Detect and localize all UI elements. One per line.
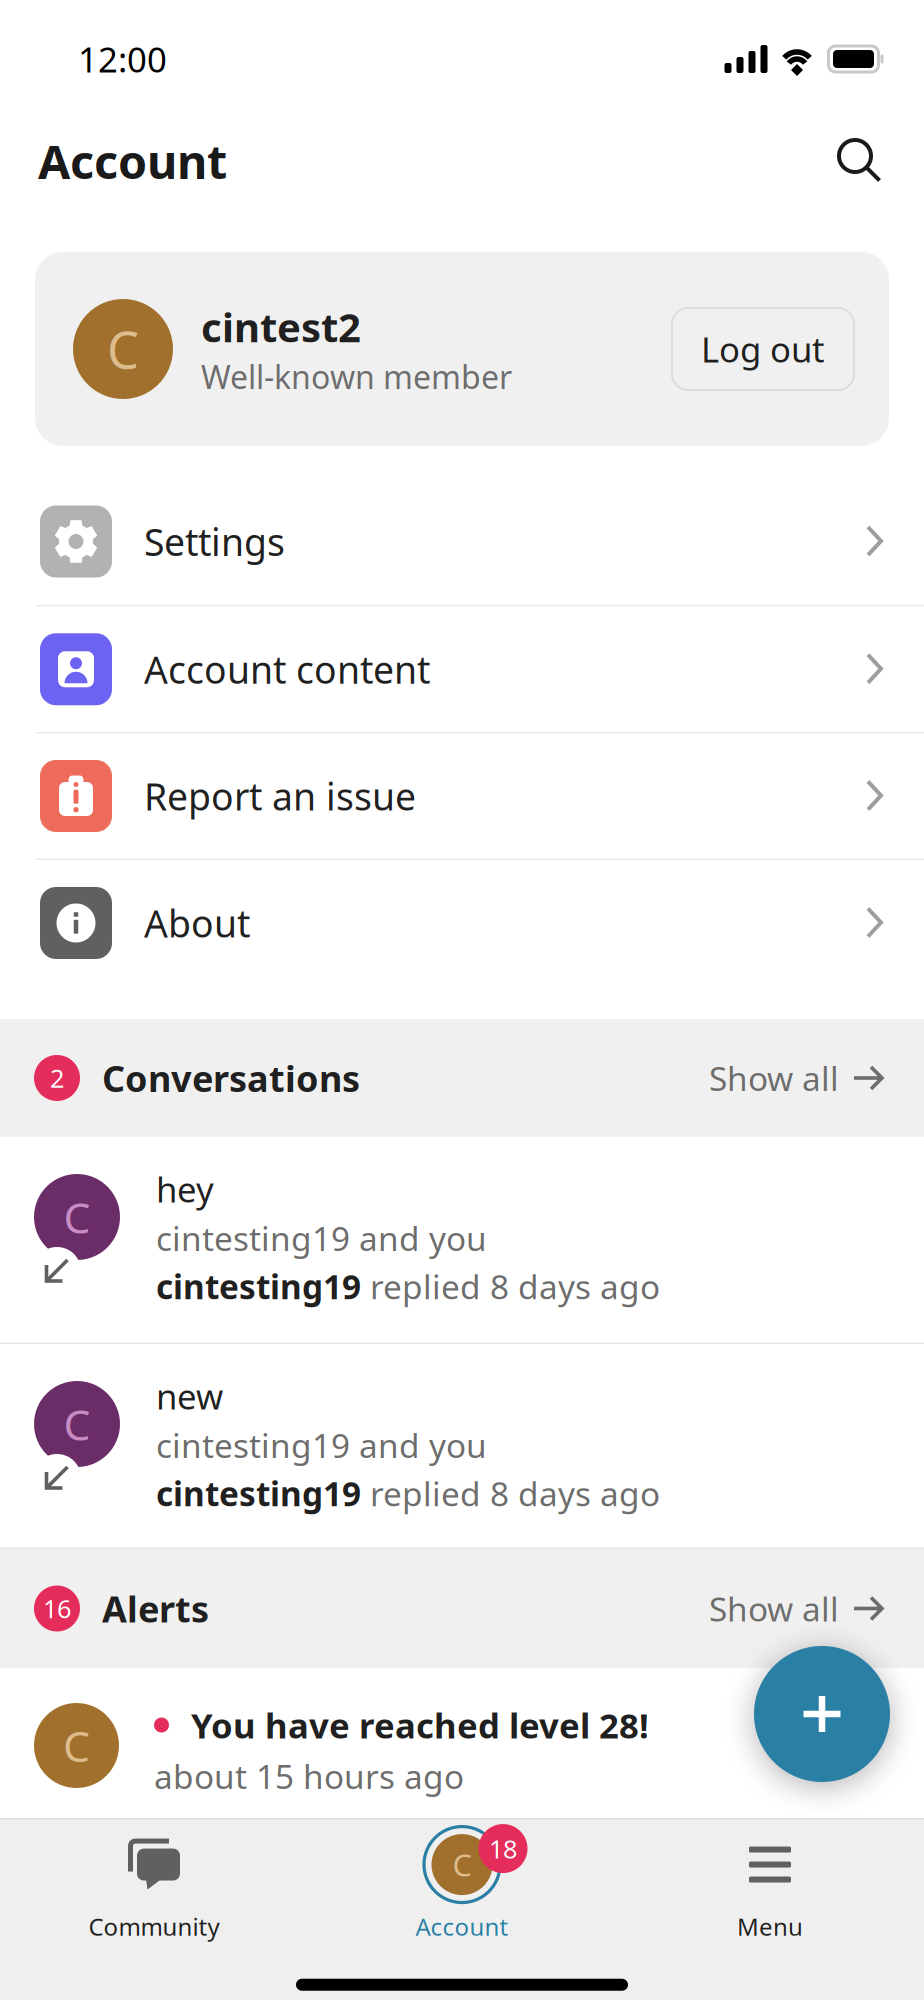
staticText: C: [452, 1844, 471, 1885]
staticText: about 15 hours ago: [154, 1754, 464, 1798]
staticText: 18: [489, 1832, 517, 1865]
button[interactable]: Search: [834, 135, 886, 187]
staticText: Well-known member: [201, 355, 512, 398]
button[interactable]: New post: [754, 1646, 890, 1782]
button[interactable]: C: [0, 1668, 924, 1818]
staticText: Menu: [737, 1911, 803, 1942]
button[interactable]: C: [0, 1137, 924, 1344]
staticText: 12:00: [78, 36, 167, 82]
button[interactable]: Community: [0, 1819, 308, 1949]
button[interactable]: Report an issue: [0, 733, 924, 860]
staticText: C: [63, 1189, 90, 1245]
staticText: C: [107, 315, 139, 383]
staticText: cintesting19: [156, 1264, 361, 1309]
button[interactable]: Log out: [672, 308, 854, 390]
button[interactable]: Show all: [709, 1586, 884, 1631]
staticText: Account: [415, 1911, 508, 1942]
staticText: Show all: [709, 1586, 839, 1631]
staticText: C: [63, 1717, 90, 1774]
staticText: 2: [50, 1061, 64, 1095]
button[interactable]: Account content: [0, 606, 924, 733]
button[interactable]: Menu: [616, 1819, 924, 1949]
button[interactable]: C: [0, 1344, 924, 1549]
staticText: Alerts: [102, 1585, 209, 1632]
staticText: cintesting19 and you: [156, 1216, 487, 1260]
staticText: Account content: [144, 644, 430, 694]
staticText: About: [144, 898, 250, 948]
button[interactable]: C: [308, 1819, 616, 1949]
staticText: new: [156, 1373, 223, 1419]
staticText: Show all: [709, 1056, 839, 1100]
staticText: Report an issue: [144, 771, 416, 821]
staticText: hey: [156, 1166, 214, 1212]
staticText: Log out: [701, 326, 825, 372]
staticText: C: [63, 1396, 90, 1452]
staticText: 16: [43, 1592, 71, 1625]
button[interactable]: Show all: [709, 1056, 884, 1100]
staticText: cintest2: [201, 300, 361, 353]
button[interactable]: Settings: [0, 478, 924, 606]
staticText: cintesting19: [156, 1471, 361, 1516]
staticText: Community: [88, 1911, 219, 1942]
staticText: You have reached level 28!: [191, 1702, 649, 1748]
staticText: Account: [38, 130, 227, 192]
button[interactable]: About: [0, 860, 924, 986]
staticText: replied 8 days ago: [361, 1264, 660, 1309]
staticText: Conversations: [102, 1054, 360, 1102]
staticText: cintesting19 and you: [156, 1423, 487, 1467]
staticText: Settings: [144, 517, 285, 566]
staticText: replied 8 days ago: [361, 1471, 660, 1516]
